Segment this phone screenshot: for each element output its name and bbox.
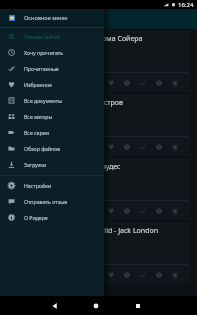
button[interactable]: Mark read [135, 265, 151, 284]
button[interactable]: Info [151, 201, 167, 220]
button[interactable]: Read later [119, 73, 135, 92]
button[interactable]: Back [47, 298, 62, 313]
staticText: Все серии [24, 129, 50, 136]
button[interactable]: Все документы [0, 92, 104, 108]
button[interactable]: Все серии [0, 124, 104, 140]
button[interactable]: Основное меню [0, 9, 104, 27]
staticText: Все авторы [24, 113, 53, 120]
button[interactable]: Delete [167, 201, 183, 220]
staticText: The Call of the Wild - Jack London [49, 226, 159, 236]
button[interactable]: The Call of the Wild - Jack London [3, 222, 191, 284]
button[interactable]: Загрузки [0, 156, 104, 172]
staticText: Чтение сейчас [24, 33, 61, 40]
staticText: Таинственный остров [49, 98, 123, 108]
button[interactable]: Алиса в стране чудес [3, 158, 191, 220]
button[interactable]: Favorite [103, 73, 119, 92]
staticText: Загрузки [24, 161, 47, 168]
staticText: Отправить отзыв [24, 198, 68, 205]
staticText: 16:24 [178, 1, 194, 9]
staticText: Обзор файлов [24, 145, 61, 152]
button[interactable]: Прочитанные [0, 60, 104, 76]
button[interactable]: Хочу прочитать [0, 44, 104, 60]
staticText: Алиса в стране чудес [49, 162, 121, 172]
staticText: Избранное [24, 81, 52, 88]
button[interactable]: Info [151, 73, 167, 92]
button[interactable]: Delete [167, 73, 183, 92]
button[interactable]: Home [88, 298, 103, 313]
button[interactable]: Таинственный остров [3, 94, 191, 156]
button[interactable]: Read later [119, 137, 135, 156]
staticText: Основное меню [24, 14, 68, 22]
button[interactable]: Read later [119, 201, 135, 220]
button[interactable]: Favorite [103, 201, 119, 220]
button[interactable]: Mark read [135, 201, 151, 220]
button[interactable]: Read later [119, 265, 135, 284]
staticText: О Ридере [24, 214, 48, 221]
staticText: Все документы [24, 97, 63, 104]
button[interactable]: Mark read [135, 73, 151, 92]
button[interactable]: Favorite [103, 137, 119, 156]
button[interactable]: Delete [167, 265, 183, 284]
button[interactable]: Настройки [0, 177, 104, 193]
button[interactable]: Mark read [135, 137, 151, 156]
button[interactable]: Приключения Тома Сойера [3, 30, 191, 92]
staticText: Настройки [24, 182, 52, 189]
button[interactable]: Обзор файлов [0, 140, 104, 156]
button[interactable]: Отправить отзыв [0, 193, 104, 209]
button[interactable]: Favorite [103, 265, 119, 284]
button[interactable]: Info [151, 265, 167, 284]
button[interactable]: Delete [167, 137, 183, 156]
button[interactable]: Чтение сейчас [0, 28, 104, 44]
button[interactable]: О Ридере [0, 209, 104, 225]
staticText: Прочитанные [24, 65, 59, 72]
button[interactable]: Все авторы [0, 108, 104, 124]
button[interactable]: Избранное [0, 76, 104, 92]
staticText: Хочу прочитать [24, 49, 64, 56]
button[interactable]: Recents [130, 298, 145, 313]
button[interactable]: Info [151, 137, 167, 156]
staticText: Приключения Тома Сойера [49, 34, 143, 44]
